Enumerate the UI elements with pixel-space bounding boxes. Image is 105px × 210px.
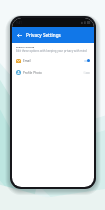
staticText: Edit these options with keeping your pri… [16, 49, 87, 53]
staticText: Profile Photo [23, 71, 42, 75]
staticText: Privacy Settings [26, 32, 61, 38]
staticText: Email [23, 59, 31, 63]
button[interactable]: Profile Photo [16, 70, 90, 75]
button[interactable]: Back [15, 31, 24, 40]
staticText: 9:41 [16, 21, 22, 25]
button[interactable]: Toggle Profile Photo [83, 71, 90, 74]
button[interactable]: Toggle Email [83, 59, 90, 62]
staticText: PROFILE SETTING [16, 46, 35, 49]
button[interactable]: Email [16, 58, 90, 63]
